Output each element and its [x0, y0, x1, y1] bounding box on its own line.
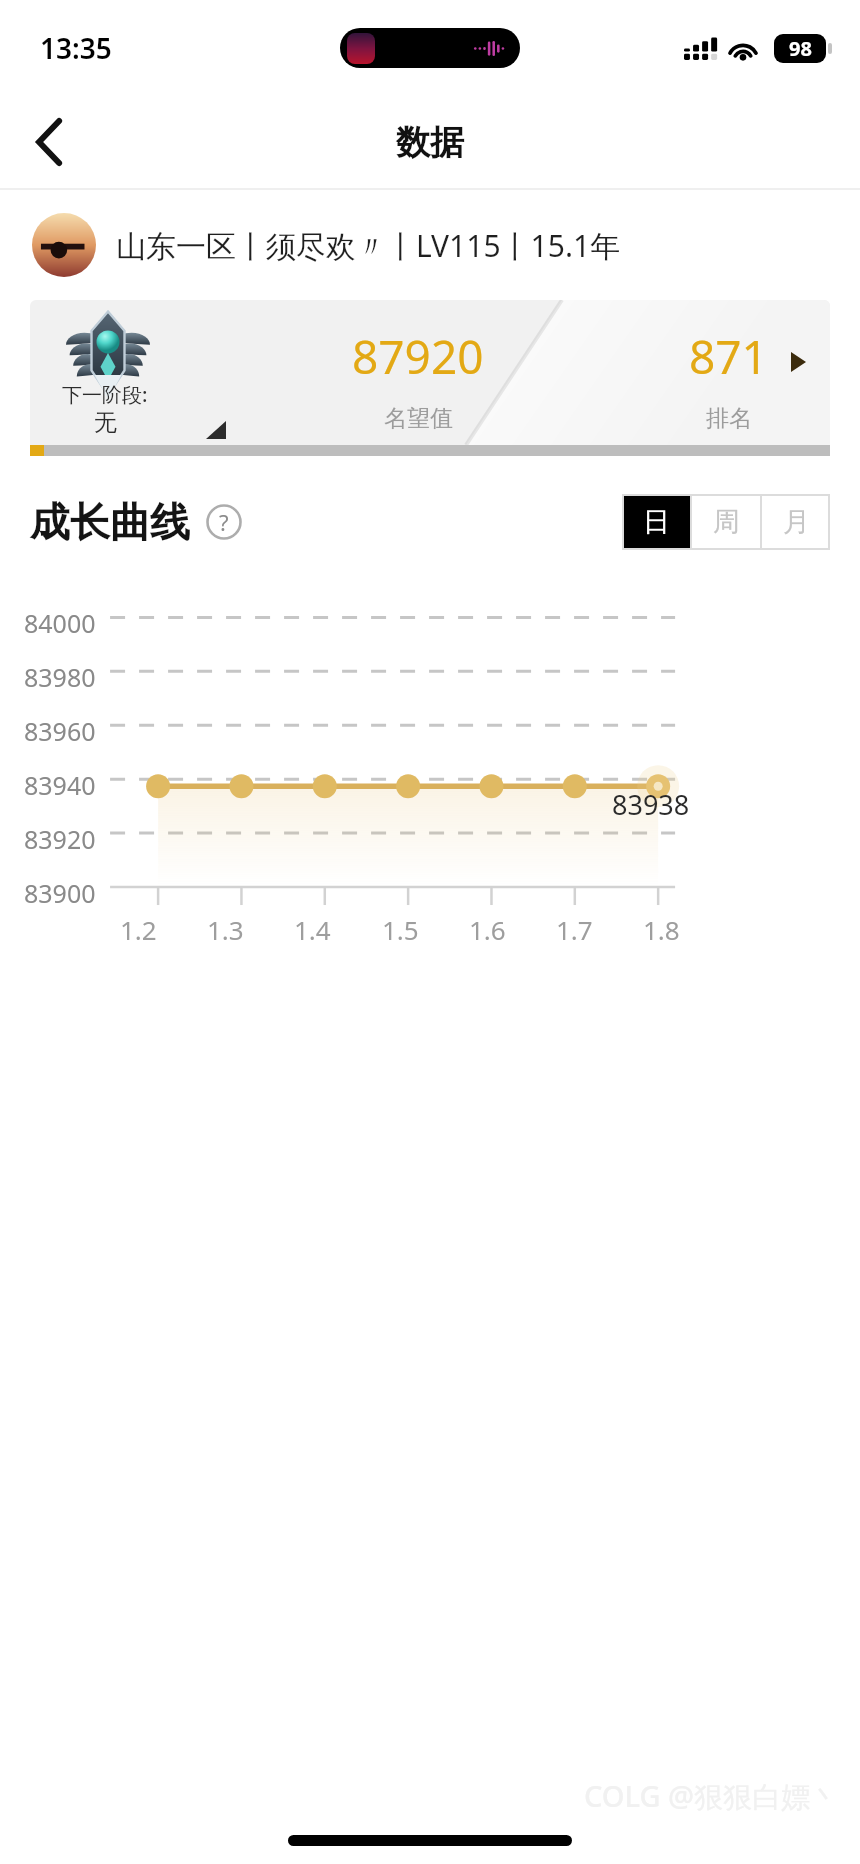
button[interactable]: Help — [206, 504, 242, 540]
staticText: 98 — [789, 35, 812, 62]
staticText: 周 — [713, 505, 740, 539]
staticText: 83940 — [24, 768, 96, 802]
staticText: 13:35 — [40, 29, 112, 67]
staticText: 1.7 — [556, 912, 593, 947]
staticText: 83920 — [24, 822, 96, 856]
button[interactable]: Back — [16, 108, 84, 176]
staticText: 1.5 — [382, 912, 419, 947]
button[interactable]: 日 — [622, 494, 690, 550]
staticText: ? — [219, 507, 229, 537]
button[interactable]: 下一阶段: — [30, 300, 830, 445]
staticText: 871 — [689, 325, 768, 388]
staticText: COLG @狠狠白嫖丶 — [584, 1776, 840, 1816]
staticText: 83938 — [612, 786, 690, 823]
staticText: 83980 — [24, 660, 96, 694]
staticText: 1.3 — [207, 912, 244, 947]
staticText: 1.6 — [469, 912, 506, 947]
staticText: 1.4 — [294, 912, 331, 947]
staticText: 数据 — [396, 121, 464, 164]
staticText: 排名 — [706, 404, 752, 433]
staticText: 无 — [94, 408, 117, 437]
staticText: 日 — [643, 505, 670, 539]
staticText: 成长曲线 — [30, 497, 190, 547]
staticText: 下一阶段: — [62, 381, 148, 408]
staticText: 84000 — [24, 606, 96, 640]
staticText: 山东一区丨须尽欢〃丨LV115丨15.1年 — [116, 225, 621, 266]
staticText: 名望值 — [384, 404, 453, 433]
staticText: 月 — [783, 505, 810, 539]
staticText: 1.8 — [643, 912, 680, 947]
staticText: 1.2 — [120, 912, 157, 947]
button[interactable]: 月 — [762, 494, 830, 550]
staticText: 83900 — [24, 876, 96, 910]
staticText: 87920 — [352, 325, 484, 388]
button[interactable]: 周 — [692, 494, 760, 550]
button[interactable]: 山东一区丨须尽欢〃丨LV115丨15.1年 — [0, 190, 860, 300]
staticText: 83960 — [24, 714, 96, 748]
